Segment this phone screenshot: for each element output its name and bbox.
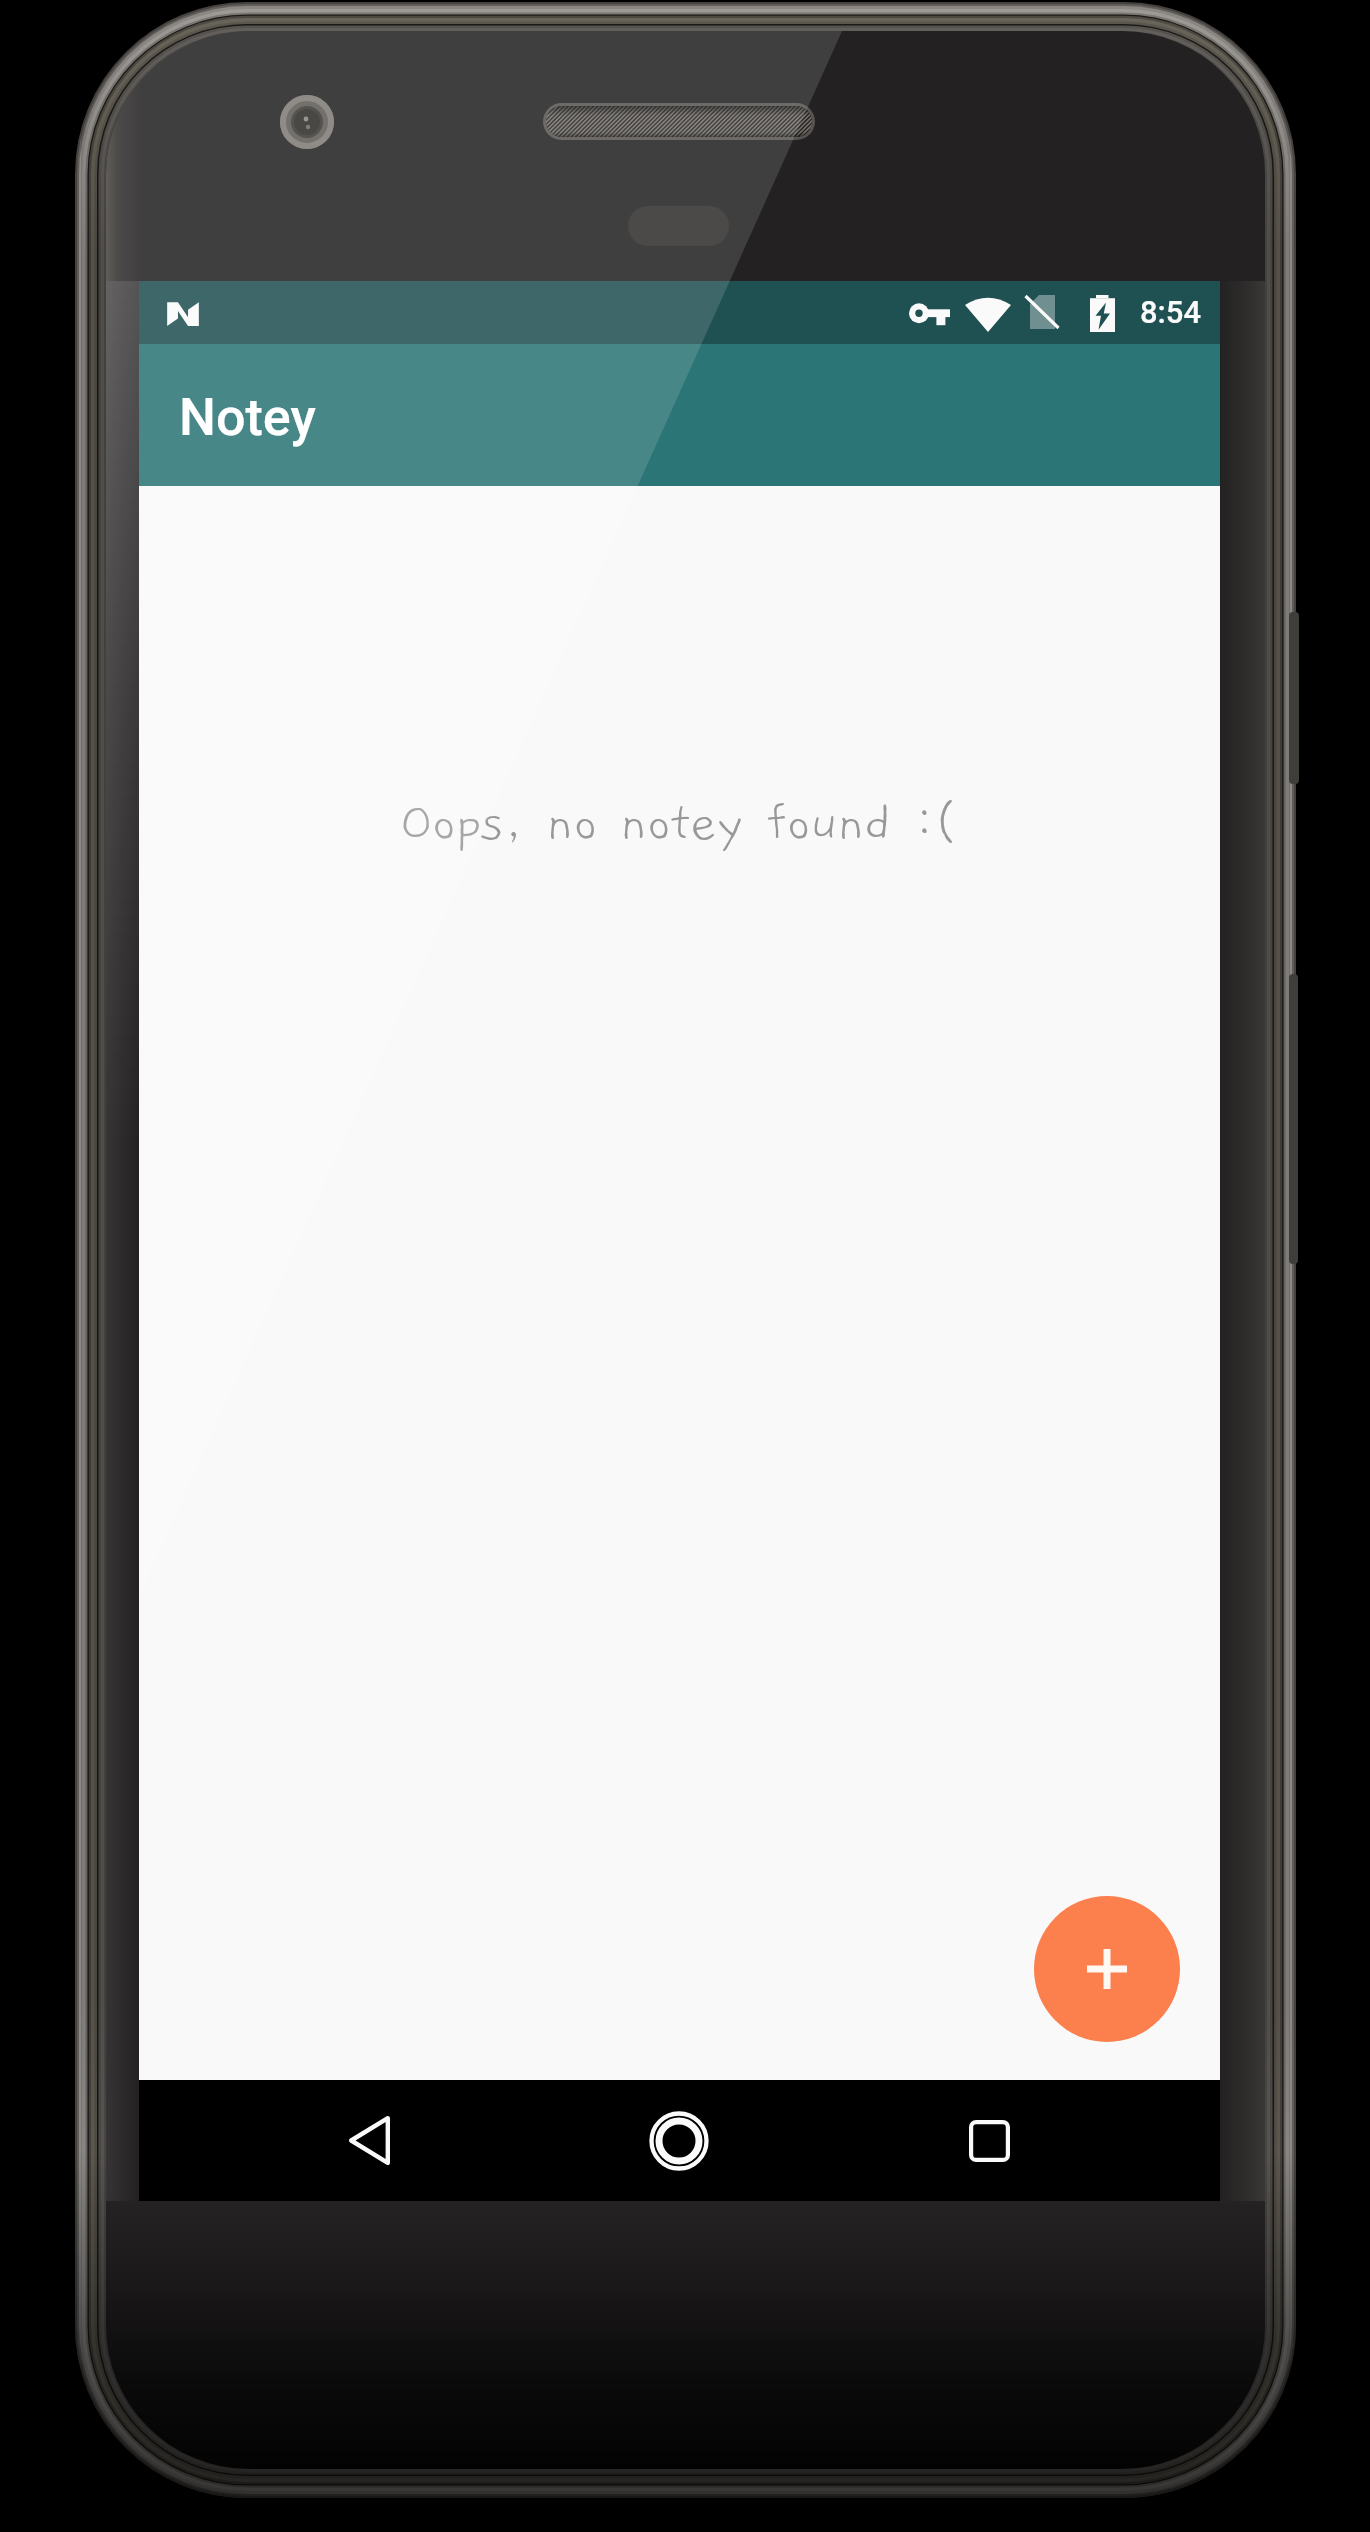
staticText: 8:54 [1140, 294, 1202, 330]
button[interactable]: Add note [1034, 1896, 1180, 2042]
button[interactable]: Recents [909, 2080, 1069, 2201]
staticText: Notey [179, 387, 316, 448]
button[interactable]: Back [289, 2080, 449, 2201]
staticText: Oops, no notey found :( [400, 795, 959, 851]
button[interactable]: Home [599, 2080, 759, 2201]
